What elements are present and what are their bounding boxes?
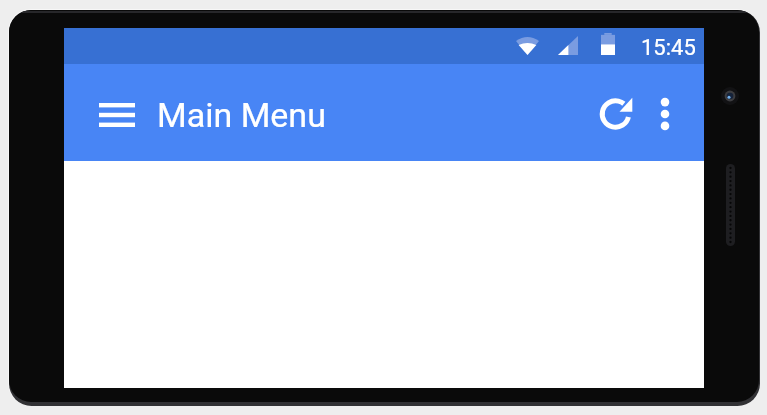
button[interactable]: More options: [641, 89, 689, 141]
staticText: 15:45: [641, 35, 696, 61]
button[interactable]: Refresh: [591, 89, 641, 141]
button[interactable]: Open navigation drawer: [90, 88, 144, 142]
staticText: Main Menu: [157, 95, 326, 135]
